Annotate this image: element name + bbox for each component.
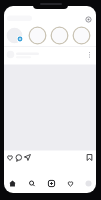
button[interactable]: Activity [65, 178, 76, 189]
button[interactable]: Home [7, 178, 18, 189]
button[interactable]: Save [86, 153, 95, 162]
button[interactable]: Your story [6, 27, 24, 45]
button[interactable]: Comment [15, 153, 24, 162]
button[interactable]: Search [27, 178, 38, 189]
button[interactable]: Story [28, 27, 46, 45]
button[interactable]: Camera [85, 16, 93, 24]
button[interactable]: Create [46, 178, 57, 189]
button[interactable]: Like [6, 153, 15, 162]
button[interactable]: Story [50, 27, 68, 45]
button[interactable]: Profile [83, 178, 94, 189]
button[interactable]: Share [24, 153, 33, 162]
button[interactable]: More options [85, 50, 95, 60]
button[interactable]: Story [72, 27, 90, 45]
